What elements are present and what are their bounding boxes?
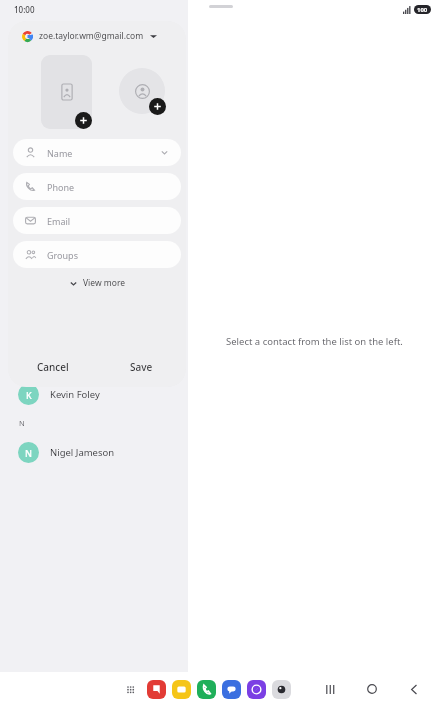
staticText: Select a contact from the list on the le… bbox=[226, 335, 403, 348]
button[interactable]: zoe.taylor.wm@gmail.com bbox=[8, 21, 186, 48]
staticText: K bbox=[26, 389, 32, 401]
staticText: Cancel bbox=[37, 360, 69, 374]
button[interactable]: Internet bbox=[247, 680, 266, 699]
button[interactable]: Files bbox=[172, 680, 191, 699]
staticText: N bbox=[19, 418, 25, 428]
staticText: zoe.taylor.wm@gmail.com bbox=[39, 30, 144, 42]
button[interactable]: Home bbox=[359, 676, 385, 702]
staticText: Phone bbox=[47, 181, 75, 193]
button[interactable]: Back bbox=[401, 676, 427, 702]
staticText: N bbox=[25, 447, 32, 459]
button[interactable]: N bbox=[0, 436, 188, 468]
staticText: Email bbox=[47, 215, 71, 227]
button[interactable]: Email bbox=[13, 207, 181, 234]
button[interactable]: K bbox=[0, 378, 188, 410]
staticText: 100 bbox=[417, 6, 428, 14]
button[interactable]: Gallery bbox=[147, 680, 166, 699]
button[interactable]: Save bbox=[97, 347, 186, 387]
staticText: Nigel Jameson bbox=[50, 446, 115, 459]
button[interactable]: All apps bbox=[122, 681, 140, 699]
button[interactable]: Phone bbox=[13, 173, 181, 200]
button[interactable]: Add profile photo bbox=[119, 68, 165, 114]
button[interactable]: Groups bbox=[13, 241, 181, 268]
staticText: Name bbox=[47, 147, 73, 159]
staticText: Save bbox=[130, 360, 153, 374]
button[interactable]: View more bbox=[8, 268, 186, 298]
button[interactable]: Camera bbox=[272, 680, 291, 699]
button[interactable]: Add cover photo bbox=[41, 55, 92, 129]
staticText: 10:00 bbox=[14, 4, 35, 15]
button[interactable]: Name bbox=[13, 139, 181, 166]
button[interactable]: Add profile photo bbox=[149, 98, 166, 115]
staticText: View more bbox=[83, 277, 126, 289]
staticText: Groups bbox=[47, 249, 78, 261]
button[interactable]: Recent apps bbox=[317, 676, 343, 702]
button[interactable]: Messages bbox=[222, 680, 241, 699]
button[interactable]: Cancel bbox=[8, 347, 97, 387]
button[interactable]: Phone bbox=[197, 680, 216, 699]
staticText: Kevin Foley bbox=[50, 388, 100, 401]
button[interactable]: Add cover photo bbox=[75, 112, 92, 129]
